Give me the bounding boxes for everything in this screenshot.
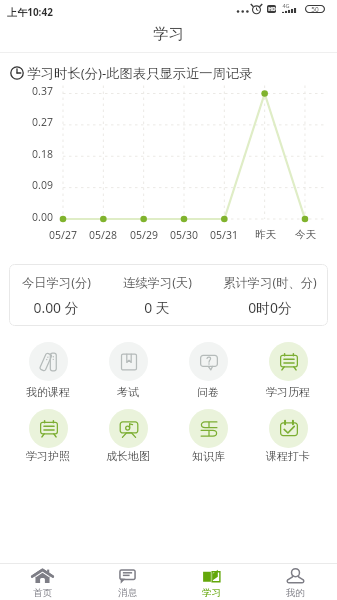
staticText: 首页: [33, 587, 52, 599]
button[interactable]: 我的课程: [8, 336, 88, 398]
staticText: 成长地图: [106, 449, 150, 463]
staticText: 课程打卡: [266, 449, 310, 463]
staticText: 0.18: [32, 147, 53, 161]
staticText: 学习: [202, 587, 221, 599]
staticText: 学习: [153, 24, 184, 44]
button[interactable]: 问卷: [168, 336, 248, 398]
staticText: 消息: [118, 587, 137, 599]
button[interactable]: 学习历程: [248, 336, 328, 398]
staticText: 我的课程: [26, 385, 70, 399]
button[interactable]: 课程打卡: [248, 403, 328, 465]
staticText: 4G: [282, 2, 290, 9]
staticText: 0 天: [144, 298, 170, 317]
staticText: 0.00: [32, 210, 53, 224]
staticText: 0.37: [32, 84, 53, 98]
button[interactable]: 知识库: [168, 403, 248, 465]
staticText: 0.27: [32, 115, 53, 129]
button[interactable]: 成长地图: [88, 403, 168, 465]
staticText: 学习护照: [26, 449, 70, 463]
staticText: 知识库: [192, 449, 225, 463]
staticText: 我的: [286, 587, 305, 599]
button[interactable]: 今日学习(分): [9, 264, 328, 326]
staticText: 今日学习(分): [22, 274, 91, 291]
staticText: 05/27: [49, 228, 77, 242]
button[interactable]: 学习护照: [8, 403, 88, 465]
staticText: 昨天: [255, 228, 276, 241]
staticText: 05/31: [210, 228, 238, 242]
staticText: 考试: [117, 385, 139, 399]
staticText: 0.00 分: [33, 298, 79, 317]
button[interactable]: 首页: [0, 564, 85, 600]
staticText: 上午10:42: [7, 5, 53, 19]
staticText: 问卷: [197, 385, 219, 399]
staticText: 今天: [295, 228, 316, 241]
button[interactable]: 消息: [85, 564, 169, 600]
staticText: 05/29: [130, 228, 158, 242]
staticText: 学习时长(分)-此图表只显示近一周记录: [27, 64, 253, 82]
staticText: 50: [311, 5, 319, 13]
staticText: 学习历程: [266, 385, 310, 399]
staticText: 0.09: [32, 178, 53, 192]
staticText: 累计学习(时、分): [223, 274, 317, 291]
staticText: 连续学习(天): [123, 274, 192, 291]
staticText: 05/28: [89, 228, 117, 242]
staticText: 0时0分: [248, 298, 292, 317]
button[interactable]: 考试: [88, 336, 168, 398]
button[interactable]: 我的: [253, 564, 337, 600]
staticText: HD: [268, 6, 276, 13]
button[interactable]: 学习: [169, 564, 253, 600]
staticText: 05/30: [170, 228, 198, 242]
